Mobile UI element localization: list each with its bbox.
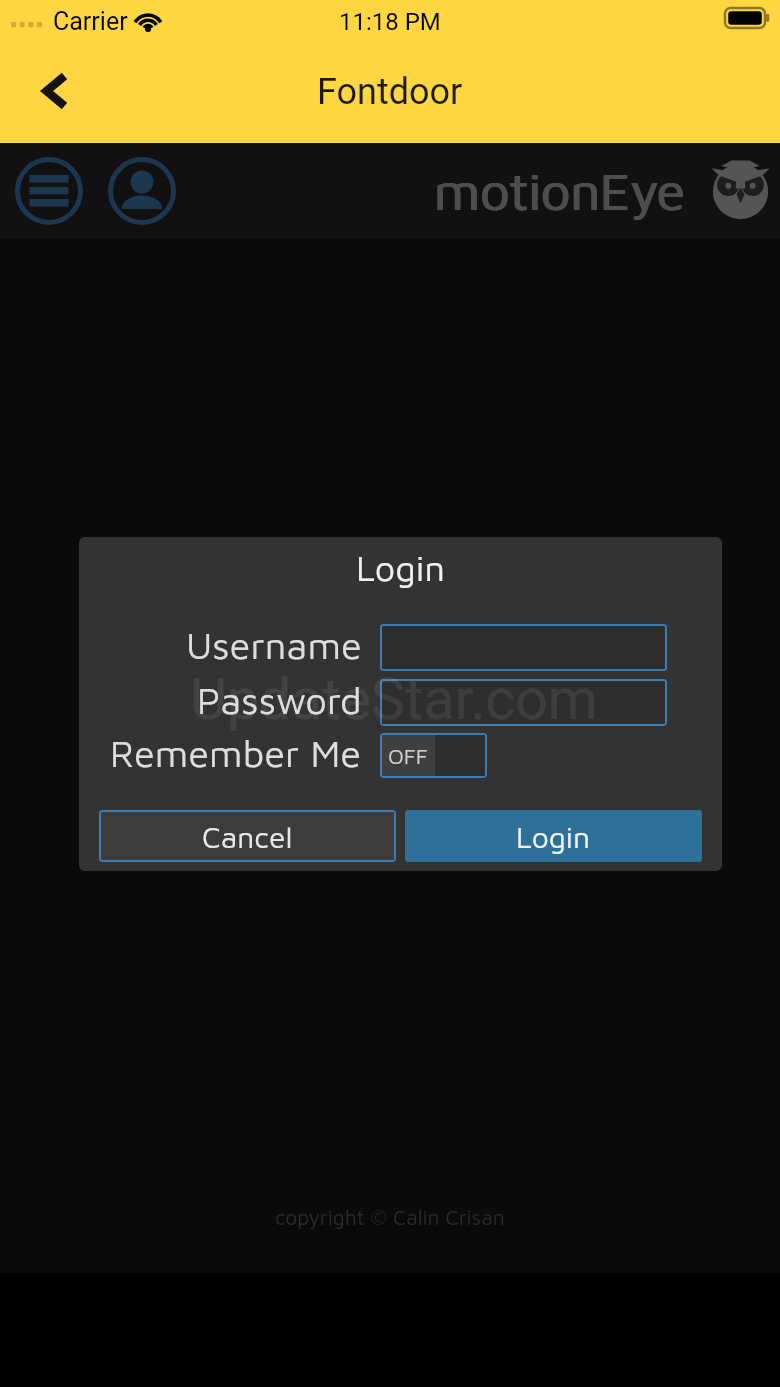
staticText: Cancel <box>202 819 293 854</box>
staticText: Carrier <box>53 7 128 36</box>
staticText: 11:18 PM <box>339 8 441 36</box>
button[interactable]: Menu <box>13 155 85 227</box>
button[interactable]: Cancel <box>99 810 396 862</box>
staticText: copyright © Calin Crisan <box>275 1205 505 1230</box>
button[interactable]: OFF <box>380 733 487 778</box>
staticText: motionEye <box>434 160 685 221</box>
staticText: Login <box>516 819 591 854</box>
staticText: motionEye <box>433 160 684 221</box>
staticText: Login <box>79 546 722 588</box>
staticText: OFF <box>388 743 428 769</box>
staticText: UpdateStar.com <box>190 666 598 733</box>
button[interactable] <box>380 679 667 726</box>
button[interactable] <box>380 624 667 671</box>
staticText: Username <box>186 622 362 667</box>
button[interactable]: Account <box>106 155 178 227</box>
staticText: Password <box>197 677 362 722</box>
staticText: Fontdoor <box>317 71 463 113</box>
staticText: Remember Me <box>110 730 362 775</box>
button[interactable]: Back <box>22 62 84 124</box>
staticText: motionEye <box>435 160 686 221</box>
button[interactable]: Login <box>405 810 702 862</box>
staticText: motionEye <box>435 160 686 221</box>
